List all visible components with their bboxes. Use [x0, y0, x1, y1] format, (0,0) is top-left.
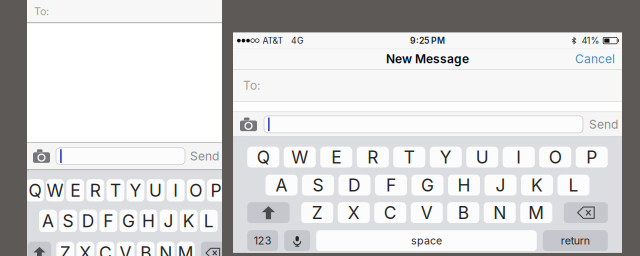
button[interactable]: Q — [26, 179, 44, 202]
button[interactable]: D — [79, 210, 97, 232]
button[interactable]: H — [448, 175, 480, 196]
button[interactable]: space — [316, 230, 537, 251]
button[interactable]: Cancel — [568, 48, 622, 69]
staticText: O — [549, 147, 562, 168]
button[interactable]: W — [284, 147, 316, 168]
staticText: N — [493, 202, 506, 223]
button[interactable]: X — [338, 202, 370, 223]
button[interactable]: A — [39, 210, 57, 232]
staticText: J — [164, 210, 174, 231]
button[interactable]: Delete — [201, 242, 224, 256]
button[interactable]: Camera — [32, 146, 51, 166]
button[interactable]: K — [521, 175, 553, 196]
button[interactable]: Delete — [564, 202, 608, 223]
staticText: W — [47, 180, 64, 201]
button[interactable]: Shift — [247, 202, 290, 223]
button[interactable]: G — [119, 210, 137, 232]
staticText: A — [42, 210, 54, 231]
button[interactable]: U — [147, 179, 164, 202]
button[interactable]: Z — [301, 202, 333, 223]
button[interactable]: J — [484, 175, 516, 196]
button[interactable]: J — [160, 210, 177, 232]
staticText: P — [586, 147, 597, 168]
button[interactable]: C — [374, 202, 406, 223]
button[interactable]: I — [503, 147, 535, 168]
staticText: 4G — [291, 35, 303, 46]
staticText: I — [516, 147, 521, 168]
button[interactable]: T — [106, 179, 124, 202]
staticText: H — [142, 210, 155, 231]
button[interactable]: W — [46, 179, 64, 202]
button[interactable]: B — [447, 202, 479, 223]
staticText: D — [348, 175, 361, 196]
button[interactable]: U — [466, 147, 498, 168]
button[interactable]: return — [543, 230, 608, 251]
staticText: F — [386, 175, 396, 196]
staticText: L — [568, 175, 578, 196]
button[interactable]: P — [576, 147, 608, 168]
button[interactable]: R — [86, 179, 104, 202]
staticText: Q — [257, 147, 270, 168]
button[interactable]: G — [411, 175, 443, 196]
staticText: space — [411, 234, 442, 247]
button[interactable]: L — [200, 210, 218, 232]
button[interactable]: Shift — [28, 242, 51, 256]
button[interactable]: Q — [247, 147, 279, 168]
button[interactable]: X — [76, 242, 94, 256]
staticText: G — [122, 210, 135, 231]
button[interactable]: Send — [583, 114, 620, 135]
button[interactable]: I — [167, 179, 185, 202]
button[interactable]: E — [66, 179, 84, 202]
button[interactable]: P — [207, 179, 225, 202]
staticText: K — [531, 175, 543, 196]
button[interactable]: O — [187, 179, 205, 202]
button[interactable]: M — [177, 242, 195, 256]
staticText: I — [173, 180, 178, 201]
staticText: Y — [440, 147, 452, 168]
button[interactable]: D — [338, 175, 370, 196]
button[interactable]: S — [59, 210, 77, 232]
button[interactable]: Camera — [239, 114, 258, 134]
staticText: M — [528, 202, 544, 223]
staticText: J — [495, 175, 505, 196]
staticText: 123 — [254, 234, 272, 247]
button[interactable]: F — [375, 175, 407, 196]
staticText: R — [90, 180, 101, 201]
staticText: R — [367, 147, 378, 168]
staticText: V — [421, 202, 433, 223]
staticText: C — [99, 242, 112, 256]
button[interactable]: Send — [185, 146, 220, 166]
button[interactable]: M — [520, 202, 552, 223]
staticText: U — [149, 180, 162, 201]
button[interactable]: E — [320, 147, 352, 168]
staticText: B — [458, 202, 469, 223]
button[interactable]: B — [137, 242, 155, 256]
button[interactable]: O — [539, 147, 571, 168]
button[interactable]: C — [96, 242, 114, 256]
staticText: return — [561, 234, 590, 247]
button[interactable]: Y — [430, 147, 462, 168]
button[interactable]: R — [357, 147, 389, 168]
button[interactable]: Dictate — [284, 230, 310, 251]
button[interactable]: H — [140, 210, 157, 232]
staticText: E — [331, 147, 341, 168]
button[interactable]: A — [265, 175, 297, 196]
button[interactable]: N — [157, 242, 175, 256]
staticText: B — [140, 242, 151, 256]
staticText: X — [348, 202, 360, 223]
button[interactable]: V — [117, 242, 134, 256]
button[interactable]: N — [484, 202, 516, 223]
staticText: Send — [190, 149, 219, 163]
button[interactable]: Y — [127, 179, 144, 202]
button[interactable]: V — [411, 202, 443, 223]
button[interactable]: K — [180, 210, 198, 232]
staticText: G — [421, 175, 434, 196]
button[interactable]: Z — [56, 242, 74, 256]
button[interactable]: S — [302, 175, 334, 196]
button[interactable]: 123 — [247, 230, 278, 251]
staticText: AT&T — [263, 35, 284, 46]
button[interactable]: L — [557, 175, 589, 196]
staticText: Q — [28, 180, 41, 201]
button[interactable]: T — [393, 147, 425, 168]
button[interactable]: F — [99, 210, 117, 232]
